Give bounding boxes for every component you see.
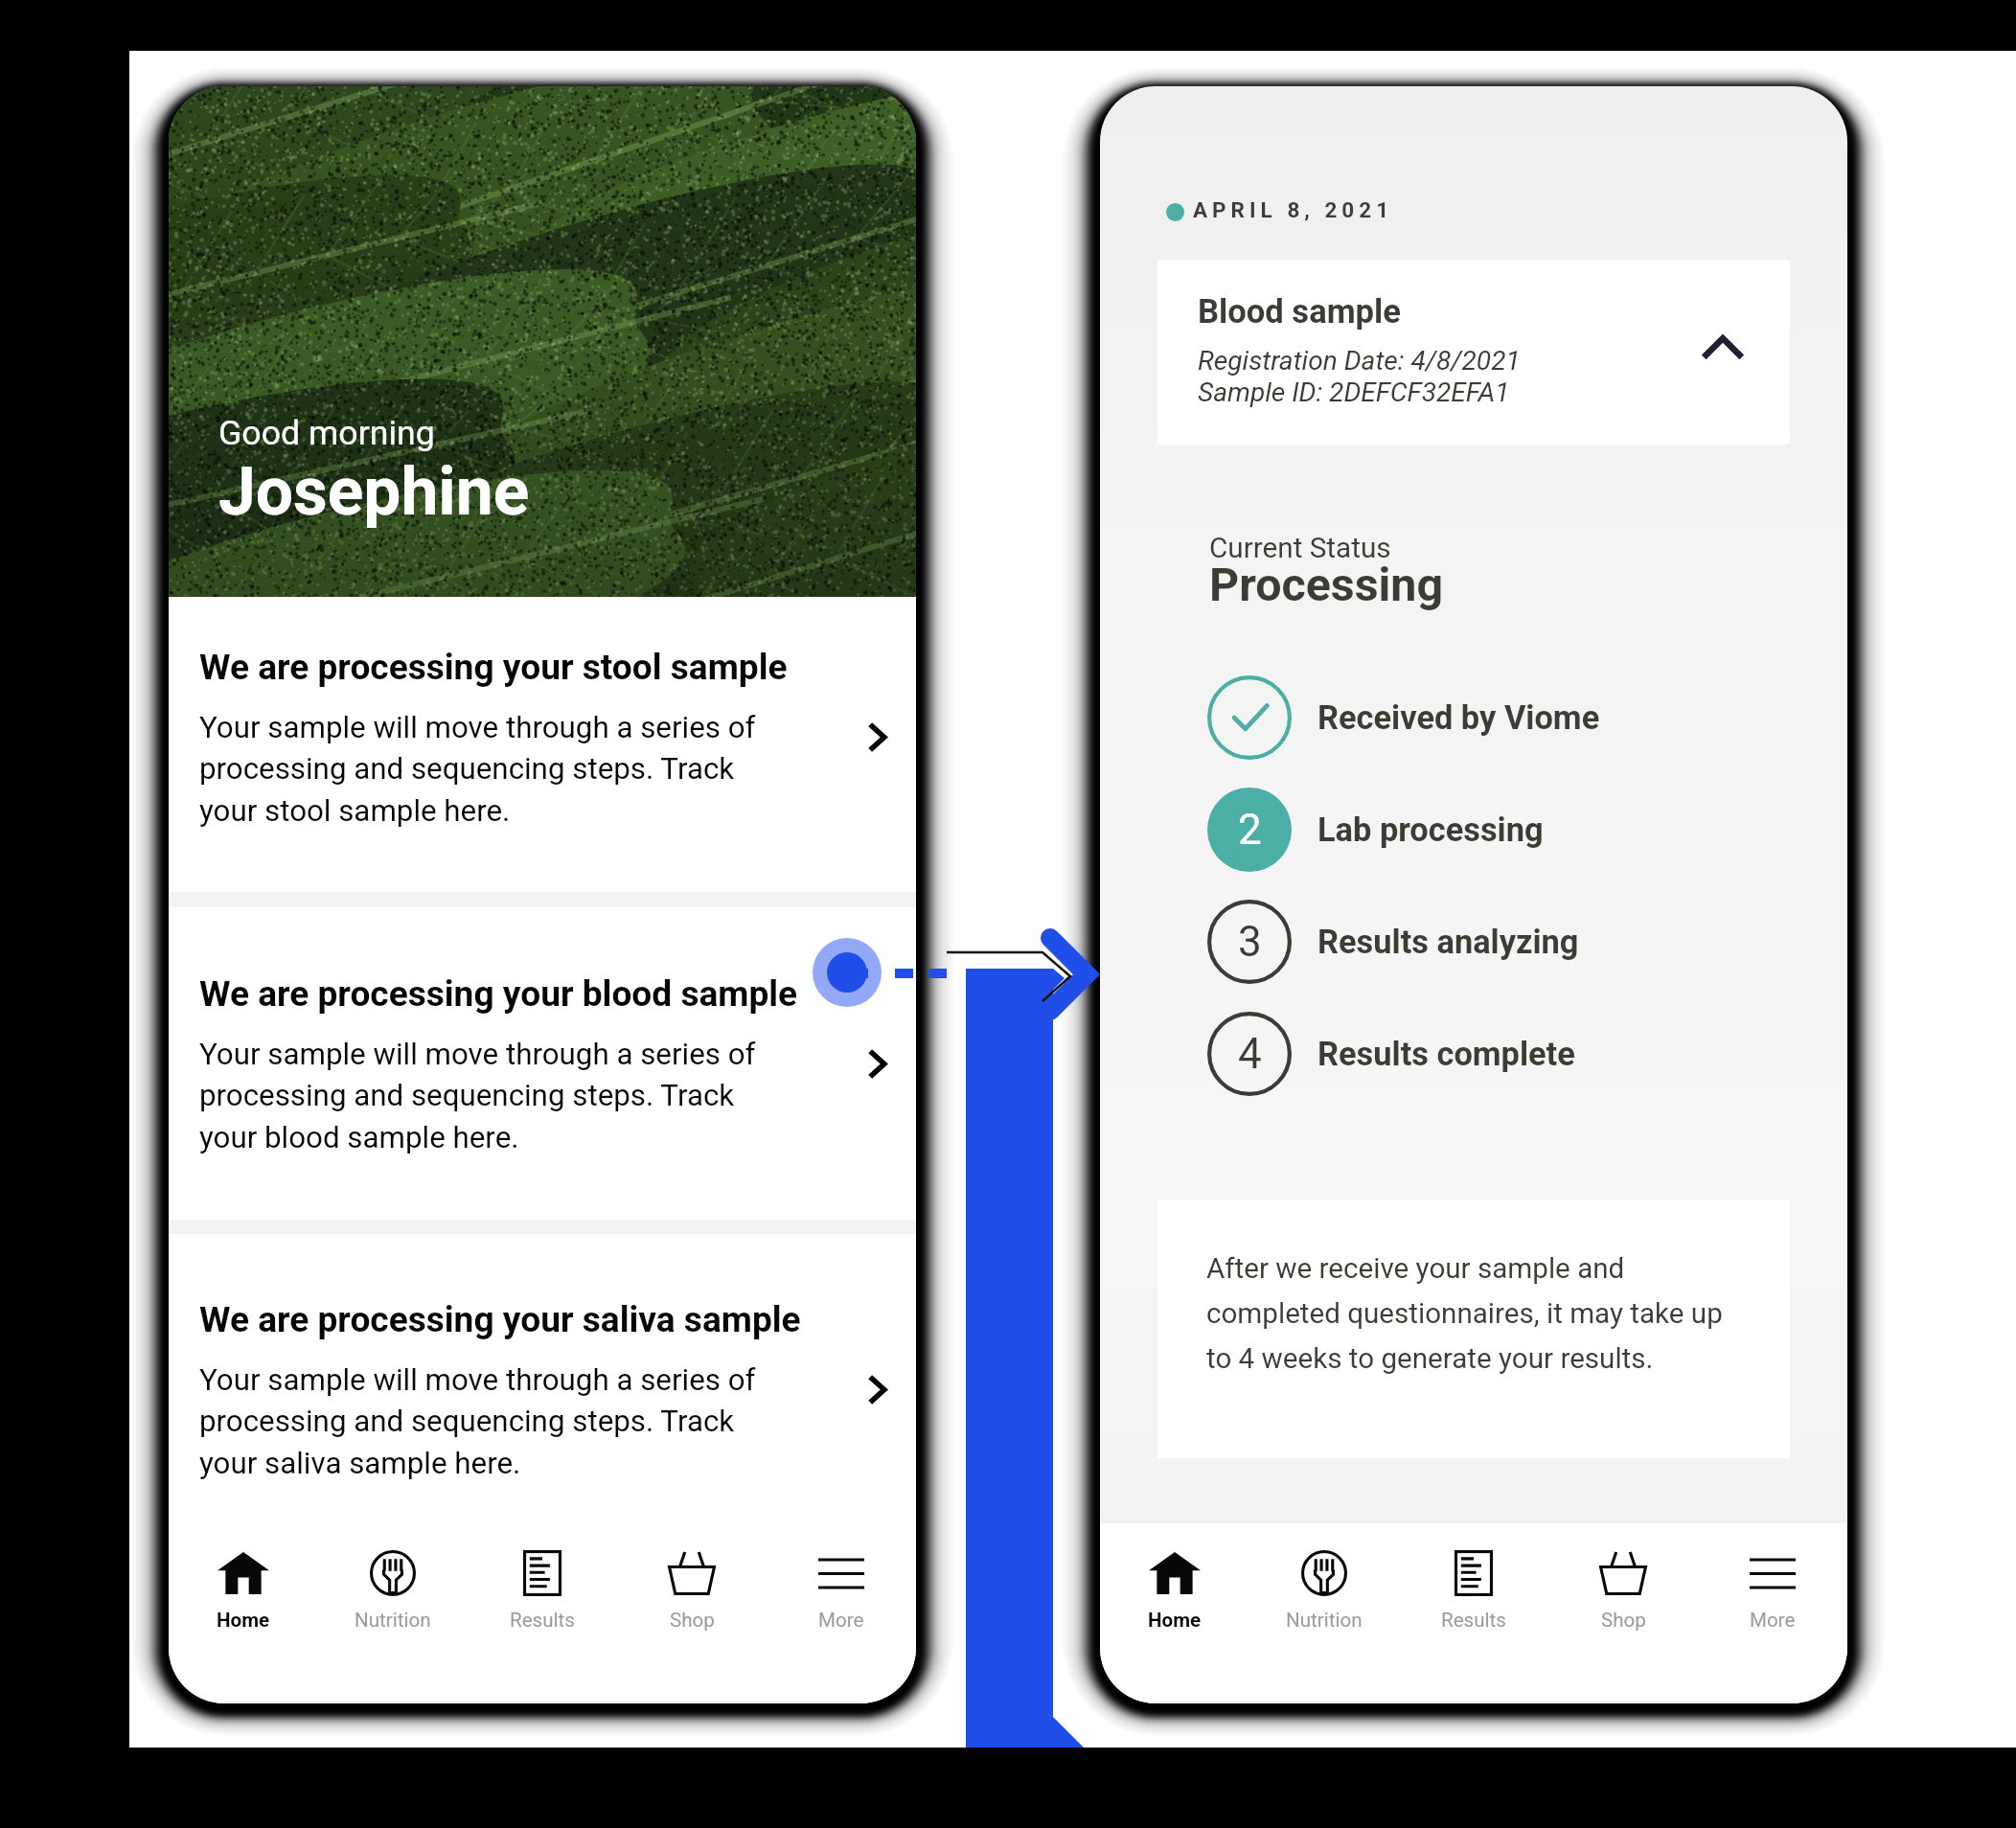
button[interactable]: Nutrition xyxy=(318,1523,468,1703)
staticText: Home xyxy=(217,1609,270,1632)
button[interactable]: Blood sample xyxy=(1157,260,1790,445)
staticText: Your sample will move through a series o… xyxy=(199,1362,774,1481)
staticText: Your sample will move through a series o… xyxy=(199,1037,774,1155)
staticText: Results complete xyxy=(1317,1035,1575,1073)
staticText: Nutrition xyxy=(1286,1609,1363,1632)
staticText: We are processing your blood sample xyxy=(199,973,798,1015)
button[interactable]: More xyxy=(1698,1523,1847,1703)
staticText: More xyxy=(818,1609,864,1632)
button[interactable]: More xyxy=(767,1523,916,1703)
staticText: Your sample will move through a series o… xyxy=(199,710,774,829)
staticText: More xyxy=(1750,1609,1796,1632)
button[interactable]: 2 xyxy=(1100,773,1847,885)
staticText: Lab processing xyxy=(1317,811,1544,849)
staticText: 2 xyxy=(1238,805,1262,855)
button[interactable]: Home xyxy=(1100,1523,1249,1703)
button[interactable]: Nutrition xyxy=(1249,1523,1399,1703)
staticText: After we receive your sample and complet… xyxy=(1206,1252,1753,1375)
button[interactable]: Shop xyxy=(617,1523,767,1703)
staticText: Josephine xyxy=(218,453,530,531)
staticText: Current Status xyxy=(1209,531,1391,564)
staticText: Results xyxy=(1441,1609,1506,1632)
button[interactable]: We are processing your stool sample xyxy=(169,597,916,892)
staticText: Results xyxy=(510,1609,575,1632)
staticText: We are processing your saliva sample xyxy=(199,1299,801,1340)
staticText: Processing xyxy=(1209,558,1444,612)
button[interactable]: We are processing your saliva sample xyxy=(169,1234,916,1523)
staticText: Home xyxy=(1148,1609,1202,1632)
staticText: We are processing your stool sample xyxy=(199,647,788,688)
staticText: Shop xyxy=(1601,1609,1646,1632)
button[interactable]: Results xyxy=(468,1523,617,1703)
staticText: APRIL 8, 2021 xyxy=(1193,197,1394,222)
staticText: Results analyzing xyxy=(1317,923,1579,961)
button[interactable]: Shop xyxy=(1548,1523,1698,1703)
button[interactable]: Received by Viome xyxy=(1100,661,1847,773)
button[interactable]: Collapse sample details xyxy=(1675,311,1771,384)
staticText: Sample ID: 2DEFCF32EFA1 xyxy=(1198,377,1510,408)
staticText: 3 xyxy=(1238,917,1262,967)
staticText: Registration Date: 4/8/2021 xyxy=(1198,345,1521,377)
button[interactable]: 3 xyxy=(1100,885,1847,997)
button[interactable]: 4 xyxy=(1100,997,1847,1109)
button[interactable]: Results xyxy=(1399,1523,1548,1703)
staticText: Blood sample xyxy=(1198,292,1401,331)
staticText: Received by Viome xyxy=(1317,698,1600,737)
staticText: Shop xyxy=(670,1609,715,1632)
staticText: Nutrition xyxy=(355,1609,431,1632)
button[interactable]: We are processing your blood sample xyxy=(169,907,916,1220)
staticText: 4 xyxy=(1238,1029,1262,1079)
button[interactable]: Home xyxy=(169,1523,318,1703)
staticText: Good morning xyxy=(218,413,435,453)
